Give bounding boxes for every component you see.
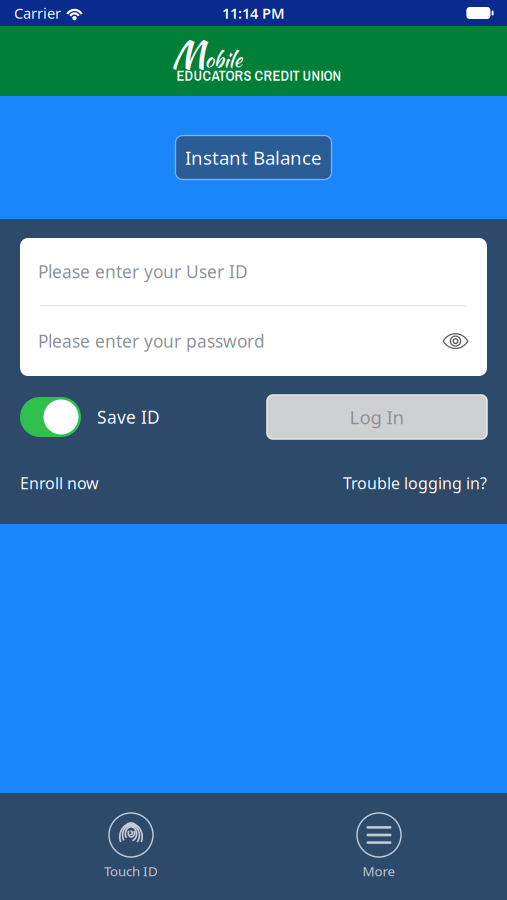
staticText: Instant Balance	[185, 145, 322, 170]
button[interactable]: Instant Balance	[175, 135, 331, 179]
staticText: Touch ID	[104, 862, 158, 880]
staticText: Carrier	[14, 3, 61, 23]
staticText: Trouble logging in?	[343, 472, 487, 494]
staticText: 11:14 PM	[222, 3, 285, 23]
staticText: Log In	[349, 405, 404, 429]
staticText: obile	[204, 44, 242, 75]
staticText: Enroll now	[20, 472, 99, 494]
staticText: Please enter your User ID	[38, 260, 248, 283]
button[interactable]: Touch ID	[61, 812, 201, 879]
staticText: Please enter your password	[38, 330, 265, 353]
button[interactable]: Trouble logging in?	[343, 469, 487, 497]
button[interactable]: Save ID	[20, 395, 160, 439]
staticText: Save ID	[97, 405, 160, 428]
staticText: More	[362, 862, 395, 880]
button[interactable]: Log In	[267, 395, 487, 439]
button[interactable]: More	[309, 812, 449, 879]
staticText: M	[171, 28, 205, 80]
button[interactable]: Enroll now	[20, 469, 99, 497]
staticText: EDUCATORS CREDIT UNION	[176, 66, 341, 85]
